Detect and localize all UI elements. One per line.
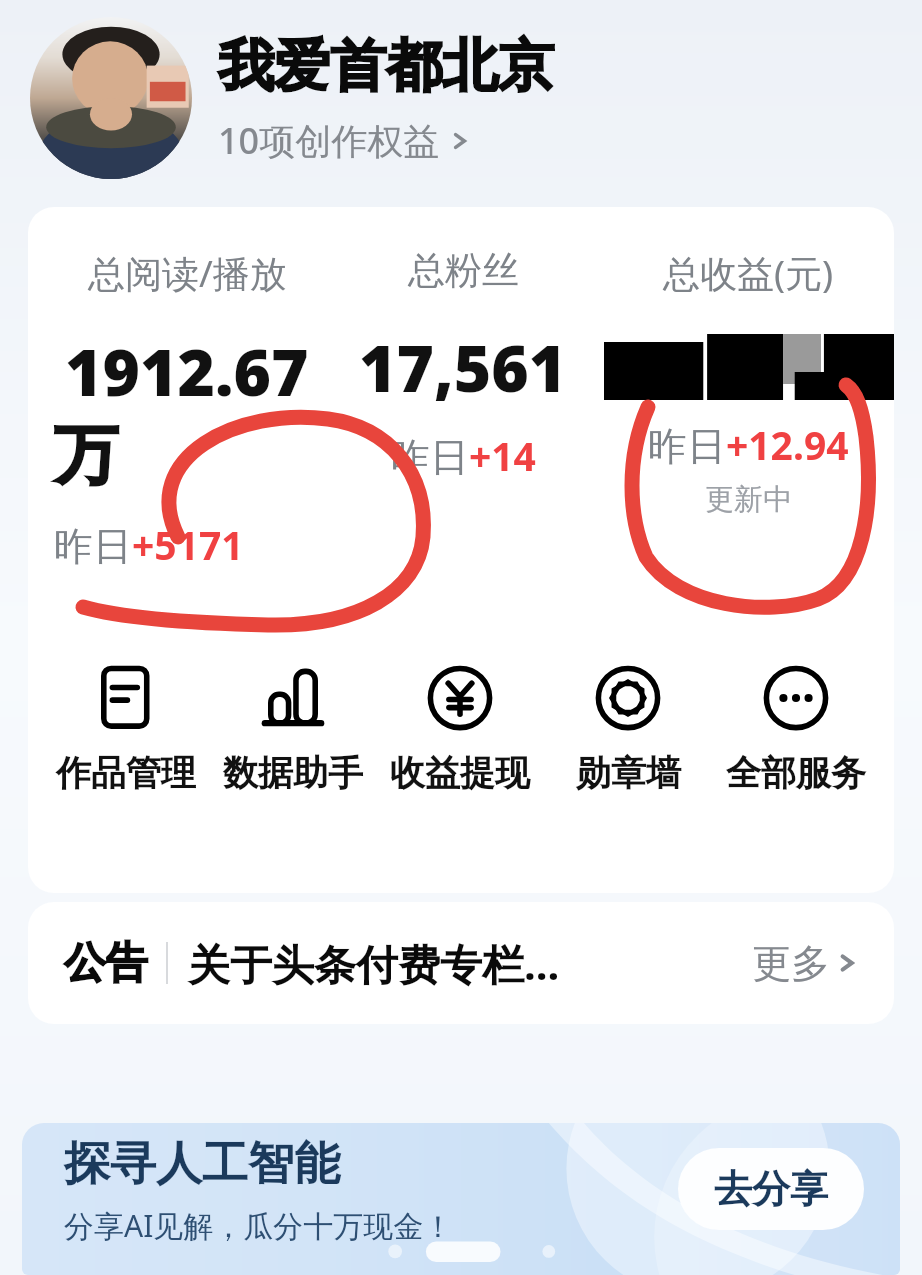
- staticText: 数据助手: [223, 751, 363, 795]
- staticText: 总收益(元): [663, 247, 834, 298]
- staticText: 总阅读/播放: [88, 247, 287, 298]
- staticText: 去分享: [714, 1165, 828, 1213]
- other: 勋章墙: [591, 661, 665, 735]
- staticText: 万: [54, 415, 118, 496]
- staticText: 收益提现: [390, 751, 530, 795]
- staticText: 勋章墙: [576, 751, 681, 795]
- staticText: 1912.67: [65, 328, 309, 415]
- staticText: 昨日+5171: [54, 518, 244, 571]
- staticText: 分享AI见解，瓜分十万现金！: [64, 1205, 454, 1246]
- staticText: 总粉丝: [408, 247, 519, 294]
- other: 作品管理: [89, 661, 163, 735]
- staticText: 全部服务: [726, 751, 866, 795]
- staticText: 17,561: [359, 324, 567, 411]
- staticText: 昨日+14: [391, 429, 536, 482]
- button[interactable]: 作品管理: [42, 657, 209, 799]
- button[interactable]: 探寻人工智能: [22, 1123, 900, 1275]
- button[interactable]: Profile avatar: [30, 17, 192, 179]
- other: 数据助手: [256, 661, 330, 735]
- staticText: 公告: [64, 937, 148, 990]
- staticText: 我爱首都北京: [218, 31, 554, 102]
- button[interactable]: 数据助手: [209, 657, 376, 799]
- button[interactable]: 收益提现: [376, 657, 544, 799]
- button[interactable]: 公告: [28, 902, 894, 1024]
- button[interactable]: 勋章墙: [544, 657, 712, 799]
- staticText: 10项创作权益: [218, 116, 440, 165]
- staticText: 更新中: [705, 481, 792, 518]
- button[interactable]: 全部服务: [712, 657, 880, 799]
- button[interactable]: 去分享: [678, 1148, 864, 1230]
- staticText: 探寻人工智能: [64, 1135, 340, 1193]
- other: 收益提现: [423, 661, 497, 735]
- other: 全部服务: [759, 661, 833, 735]
- staticText: 作品管理: [56, 751, 196, 795]
- staticText: 昨日+12.94: [648, 418, 849, 471]
- button[interactable]: 10项创作权益: [218, 116, 470, 165]
- staticText: 关于头条付费专栏...: [188, 935, 740, 992]
- staticText: 更多: [752, 939, 830, 988]
